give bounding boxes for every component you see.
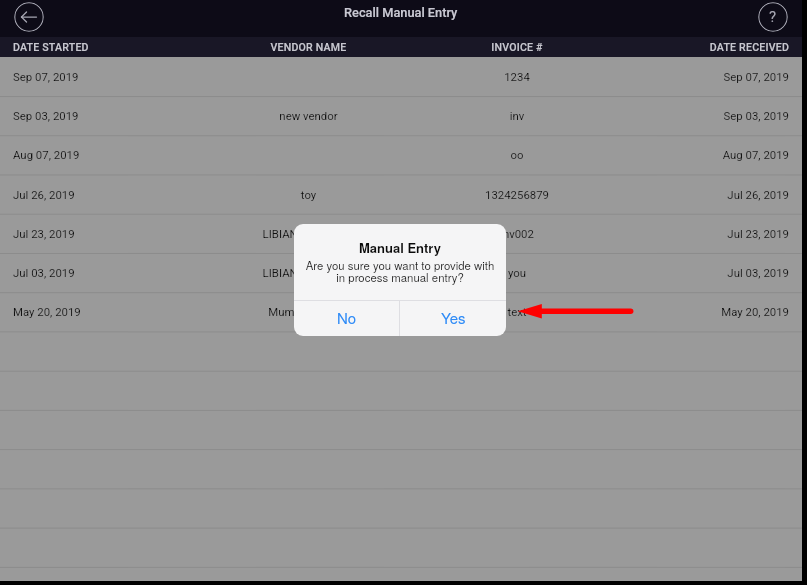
staticText: Sep 03, 2019 xyxy=(634,109,789,122)
staticText: Manual Entry xyxy=(359,238,441,257)
staticText: ? xyxy=(769,8,777,26)
staticText: No xyxy=(337,307,357,328)
staticText: Recall Manual Entry xyxy=(344,5,458,20)
staticText: new vendor xyxy=(217,109,400,122)
staticText: Jul 03, 2019 xyxy=(13,266,191,279)
staticText: Jul 26, 2019 xyxy=(634,188,789,201)
button[interactable] xyxy=(0,332,802,370)
staticText: May 20, 2019 xyxy=(13,305,191,318)
staticText: inv002 xyxy=(426,227,608,240)
button[interactable] xyxy=(0,567,802,585)
staticText: text xyxy=(426,305,608,318)
staticText: DATE STARTED xyxy=(13,41,191,53)
staticText: Sep 07, 2019 xyxy=(634,70,789,83)
staticText: May 20, 2019 xyxy=(634,305,789,318)
staticText: 1234 xyxy=(426,70,608,83)
staticText: you xyxy=(426,266,608,279)
staticText: VENDOR NAME xyxy=(217,41,400,53)
staticText: DATE RECEIVED xyxy=(634,41,789,53)
staticText: Are you sure you want to provide with in… xyxy=(294,257,506,285)
staticText: toy xyxy=(217,188,400,201)
staticText: 1324256879 xyxy=(426,188,608,201)
staticText: Yes xyxy=(441,307,466,328)
staticText: Mumbai Vendor xyxy=(217,305,400,318)
staticText: Aug 07, 2019 xyxy=(634,148,789,161)
button[interactable]: Sep 07, 2019 xyxy=(0,57,802,95)
button[interactable]: Yes xyxy=(400,301,506,336)
button[interactable]: Help xyxy=(758,2,788,32)
staticText: INVOICE # xyxy=(426,41,608,53)
staticText: LIBIAN COMPANY xyxy=(217,227,400,240)
staticText: Sep 03, 2019 xyxy=(13,109,191,122)
button[interactable]: Back xyxy=(14,2,44,32)
staticText: Jul 23, 2019 xyxy=(13,227,191,240)
button[interactable]: Jul 26, 2019 xyxy=(0,175,802,213)
staticText: Sep 07, 2019 xyxy=(13,70,191,83)
staticText: Aug 07, 2019 xyxy=(13,148,191,161)
button[interactable]: Sep 03, 2019 xyxy=(0,96,802,134)
button[interactable]: Jul 23, 2019 xyxy=(0,214,802,252)
button[interactable]: Aug 07, 2019 xyxy=(0,135,802,173)
button[interactable]: No xyxy=(294,301,399,336)
staticText: Jul 23, 2019 xyxy=(634,227,789,240)
staticText: Jul 26, 2019 xyxy=(13,188,191,201)
staticText: LIBIAN COMPANY xyxy=(217,266,400,279)
button[interactable]: May 20, 2019 xyxy=(0,292,802,330)
staticText: oo xyxy=(426,148,608,161)
staticText: Jul 03, 2019 xyxy=(634,266,789,279)
button[interactable]: Jul 03, 2019 xyxy=(0,253,802,291)
staticText: inv xyxy=(426,109,608,122)
